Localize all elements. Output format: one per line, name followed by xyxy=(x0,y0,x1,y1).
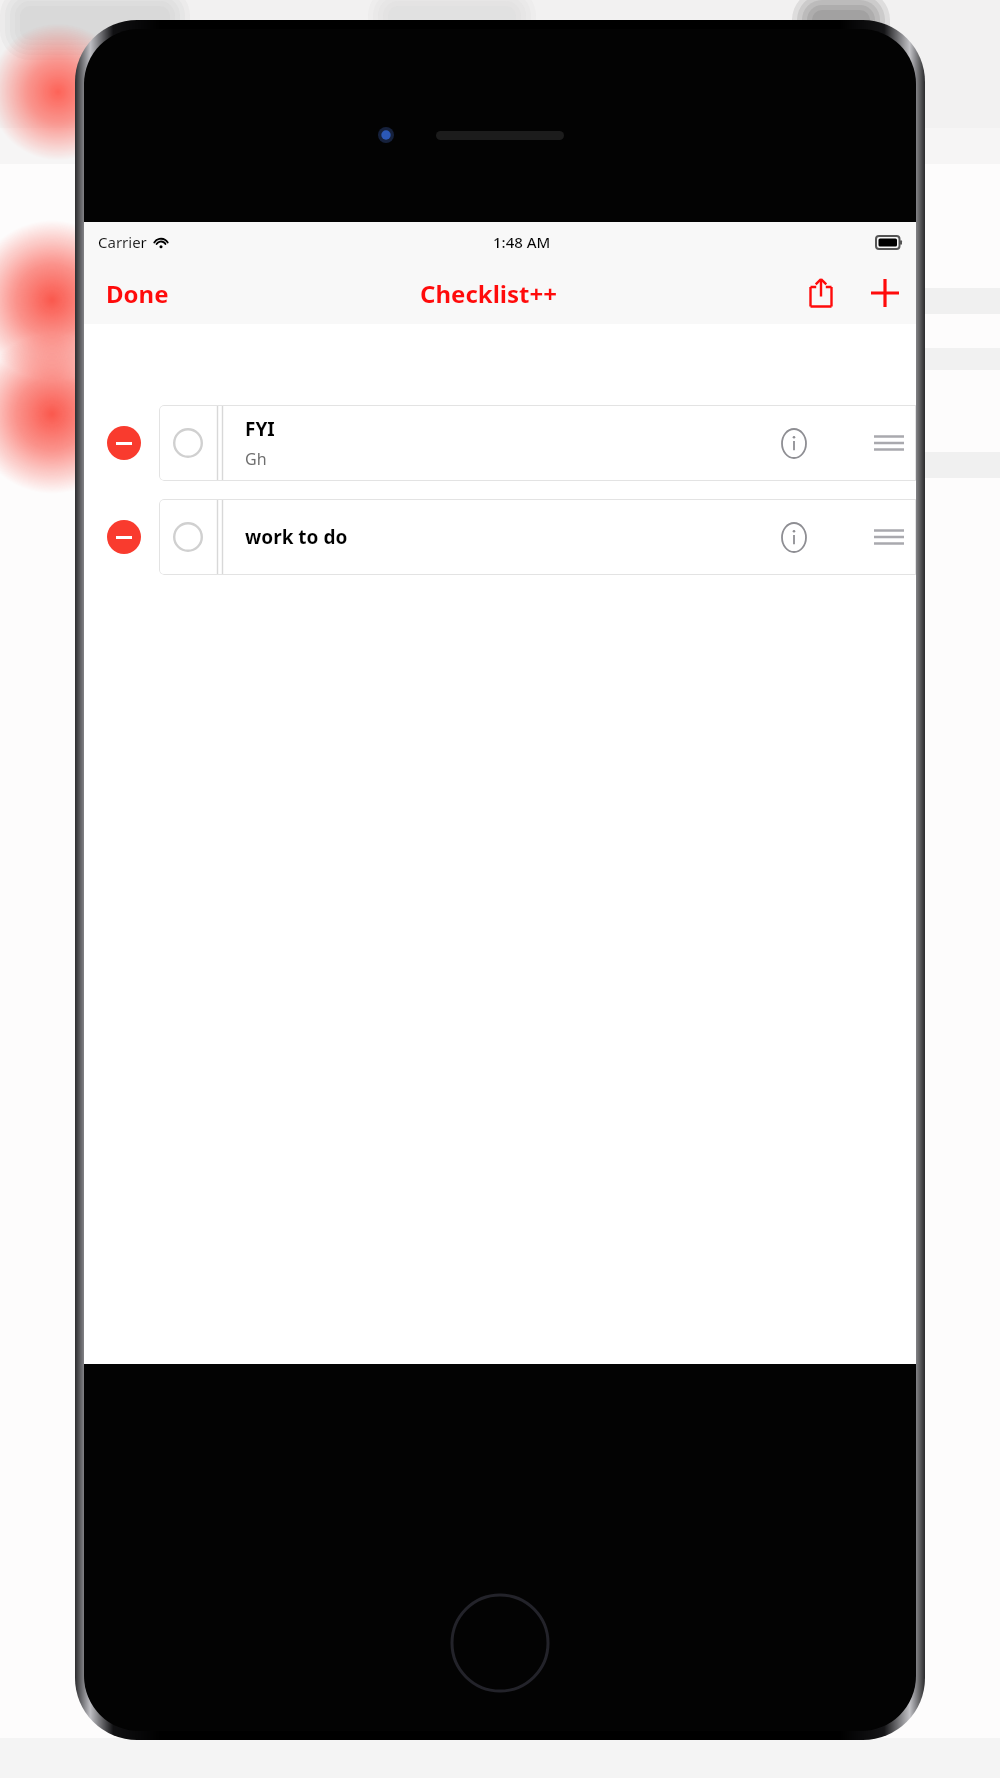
button[interactable]: Delete FYI xyxy=(84,398,916,488)
button[interactable]: Details for FYI xyxy=(774,423,814,463)
button[interactable]: Share xyxy=(798,270,844,316)
staticText: work to do xyxy=(245,524,348,550)
button[interactable]: Toggle FYI xyxy=(171,426,205,460)
button[interactable]: Add item xyxy=(860,268,910,318)
button[interactable]: Delete FYI xyxy=(107,426,141,460)
staticText: 1:48 AM xyxy=(493,232,551,252)
staticText: Done xyxy=(106,277,169,310)
staticText: Gh xyxy=(245,448,267,470)
button[interactable]: Toggle work to do xyxy=(171,520,205,554)
button[interactable]: Delete work to do xyxy=(84,492,916,582)
button[interactable]: Done xyxy=(96,271,179,316)
staticText: Checklist++ xyxy=(420,277,557,310)
staticText: FYI xyxy=(245,416,275,442)
button[interactable]: Delete work to do xyxy=(107,520,141,554)
button[interactable]: Reorder work to do xyxy=(866,517,912,557)
button[interactable]: Reorder FYI xyxy=(866,423,912,463)
button[interactable]: Details for work to do xyxy=(774,517,814,557)
staticText: Carrier xyxy=(98,232,147,252)
